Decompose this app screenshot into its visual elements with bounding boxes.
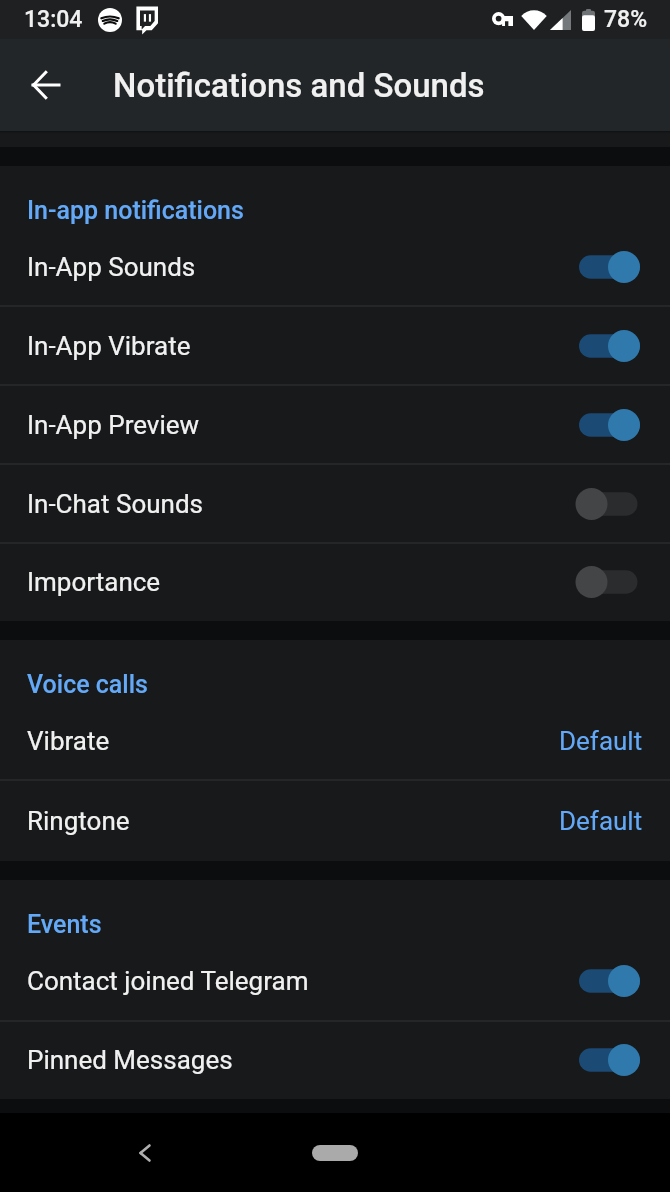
staticText: Events: [27, 910, 102, 939]
staticText: In-Chat Sounds: [27, 489, 575, 519]
staticText: Default: [559, 806, 643, 836]
staticText: In-App Preview: [27, 410, 575, 440]
staticText: Vibrate: [27, 726, 559, 756]
staticText: Voice calls: [27, 670, 148, 699]
button[interactable]: Contact joined Telegram: [0, 941, 670, 1021]
staticText: Notifications and Sounds: [113, 66, 485, 105]
staticText: 78%: [604, 6, 648, 33]
staticText: Pinned Messages: [27, 1045, 575, 1075]
staticText: Default: [559, 726, 643, 756]
staticText: Ringtone: [27, 806, 559, 836]
staticText: Contact joined Telegram: [27, 966, 575, 996]
staticText: Importance: [27, 567, 575, 597]
button[interactable]: In-App Preview: [0, 385, 670, 464]
button[interactable]: In-Chat Sounds: [0, 464, 670, 543]
button[interactable]: Home: [312, 1145, 358, 1161]
button[interactable]: Back: [118, 1126, 172, 1180]
staticText: In-app notifications: [27, 196, 244, 225]
staticText: 13:04: [24, 6, 83, 33]
button[interactable]: Pinned Messages: [0, 1021, 670, 1099]
staticText: In-App Vibrate: [27, 331, 575, 361]
button[interactable]: Back: [14, 54, 76, 116]
button[interactable]: In-App Vibrate: [0, 306, 670, 385]
button[interactable]: Importance: [0, 543, 670, 621]
button[interactable]: Vibrate: [0, 701, 670, 780]
button[interactable]: In-App Sounds: [0, 227, 670, 306]
button[interactable]: Ringtone: [0, 780, 670, 861]
staticText: In-App Sounds: [27, 252, 575, 282]
